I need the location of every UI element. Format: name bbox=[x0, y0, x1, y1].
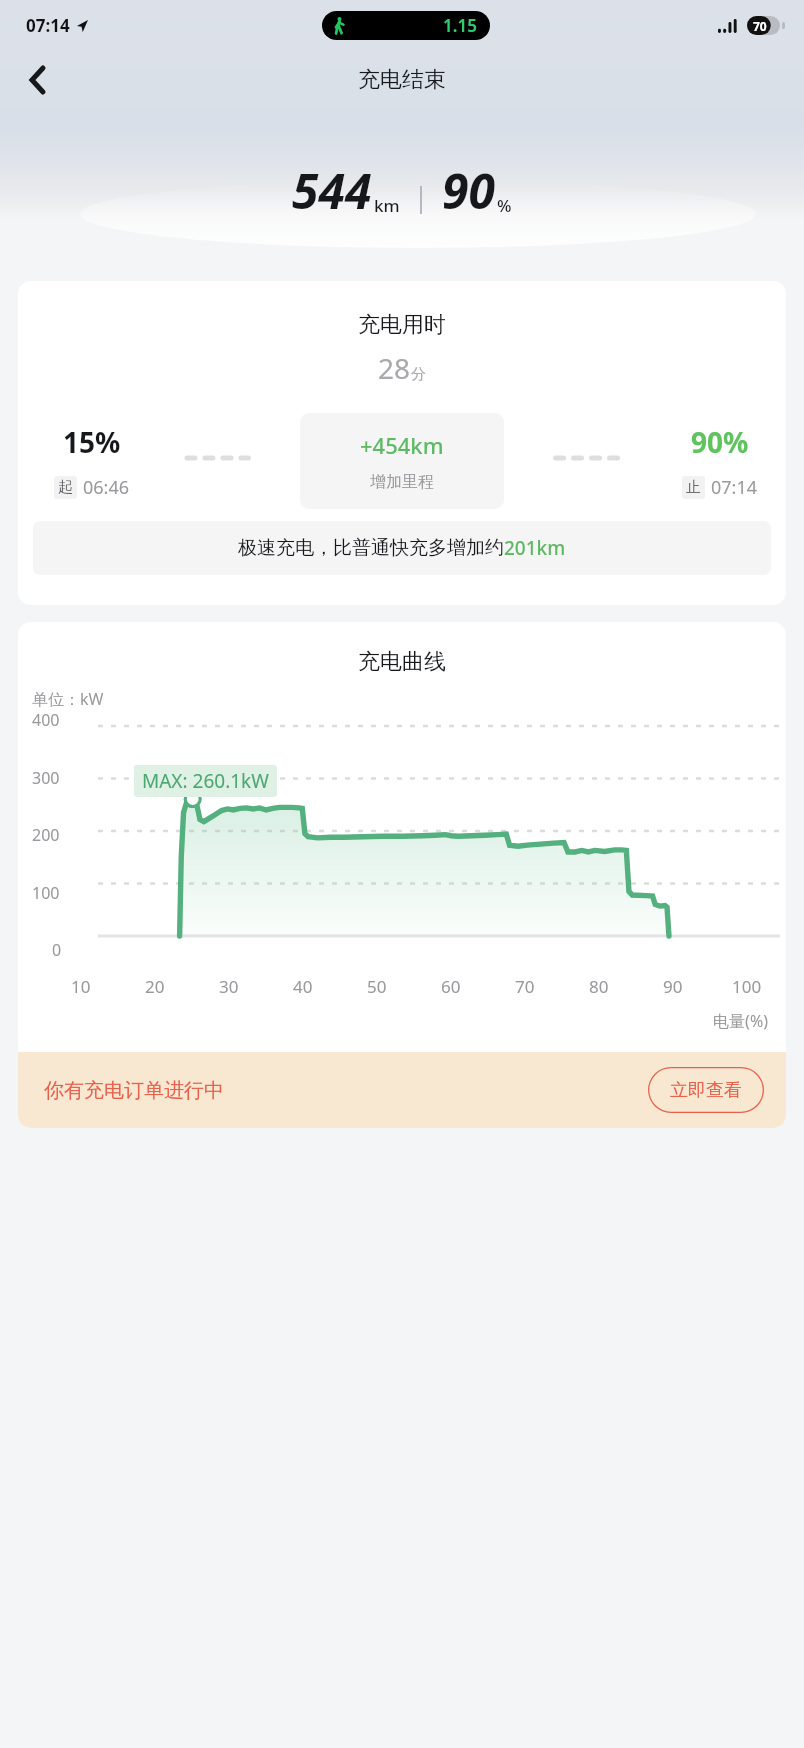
staticText: 90% bbox=[691, 423, 749, 461]
staticText: 增加里程 bbox=[370, 472, 434, 492]
staticText: 1.15 bbox=[443, 14, 477, 37]
staticText: 20 bbox=[145, 975, 165, 998]
staticText: 分 bbox=[411, 365, 426, 384]
staticText: % bbox=[497, 194, 512, 217]
staticText: 你有充电订单进行中 bbox=[44, 1078, 224, 1103]
staticText: 10 bbox=[71, 975, 91, 998]
staticText: 极速充电，比普通快充多增加约 bbox=[238, 536, 504, 560]
staticText: 100 bbox=[32, 882, 60, 904]
staticText: 30 bbox=[219, 975, 239, 998]
staticText: 止 bbox=[686, 478, 701, 497]
staticText: 15% bbox=[63, 423, 121, 461]
staticText: 300 bbox=[32, 767, 60, 789]
button[interactable]: 充电曲线 bbox=[18, 622, 786, 1128]
staticText: 60 bbox=[441, 975, 461, 998]
staticText: 06:46 bbox=[83, 475, 130, 500]
staticText: 0 bbox=[52, 939, 62, 961]
button[interactable]: 你有充电订单进行中 bbox=[18, 1052, 786, 1128]
staticText: +454km bbox=[360, 430, 444, 460]
staticText: 70 bbox=[515, 975, 535, 998]
staticText: 充电用时 bbox=[18, 311, 786, 339]
staticText: 立即查看 bbox=[670, 1079, 742, 1102]
staticText: 544 bbox=[292, 158, 372, 223]
staticText: 28 bbox=[378, 349, 411, 387]
staticText: 90 bbox=[663, 975, 683, 998]
button[interactable]: 充电用时 bbox=[18, 281, 786, 605]
staticText: 40 bbox=[293, 975, 313, 998]
button[interactable]: Back bbox=[12, 55, 62, 105]
staticText: 100 bbox=[732, 975, 762, 998]
staticText: 80 bbox=[589, 975, 609, 998]
staticText: 400 bbox=[32, 709, 60, 731]
staticText: 70 bbox=[753, 18, 767, 34]
staticText: 201km bbox=[504, 535, 566, 561]
staticText: MAX: 260.1kW bbox=[142, 768, 269, 794]
staticText: 充电结束 bbox=[358, 66, 446, 94]
staticText: 电量(%) bbox=[18, 1010, 768, 1032]
staticText: km bbox=[374, 194, 400, 217]
staticText: 起 bbox=[58, 478, 73, 497]
staticText: 充电曲线 bbox=[18, 648, 786, 676]
staticText: 200 bbox=[32, 824, 60, 846]
staticText: 07:14 bbox=[711, 475, 758, 500]
button[interactable]: 立即查看 bbox=[648, 1067, 764, 1113]
staticText: 90 bbox=[442, 158, 495, 223]
staticText: 单位：kW bbox=[32, 688, 104, 710]
staticText: 07:14 bbox=[26, 14, 70, 37]
staticText: 50 bbox=[367, 975, 387, 998]
